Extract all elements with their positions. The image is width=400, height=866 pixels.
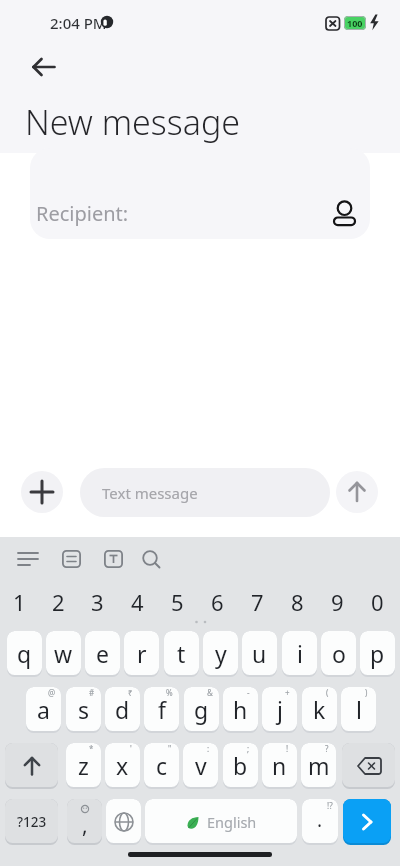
button[interactable]: e <box>85 631 120 677</box>
button[interactable]: 0 <box>357 587 397 615</box>
staticText: l <box>356 694 362 725</box>
staticText: Text message <box>102 483 198 503</box>
button[interactable] <box>24 48 64 86</box>
staticText: u <box>252 638 267 669</box>
button[interactable] <box>8 544 48 574</box>
staticText: p <box>370 638 385 669</box>
staticText: g <box>194 694 209 725</box>
staticText: % <box>166 687 173 698</box>
staticText: h <box>233 694 248 725</box>
button[interactable]: i <box>282 631 317 677</box>
staticText: w <box>54 638 73 669</box>
staticText: 3 <box>91 587 104 615</box>
button[interactable]: b <box>223 743 258 789</box>
button[interactable] <box>336 471 378 513</box>
staticText: r <box>137 638 147 669</box>
staticText: - <box>247 687 250 698</box>
button[interactable]: 9 <box>317 587 357 615</box>
button[interactable]: p <box>360 631 395 677</box>
staticText: " <box>168 743 172 754</box>
button[interactable] <box>93 544 133 574</box>
button[interactable]: ?123 <box>5 799 58 845</box>
staticText: English <box>207 812 257 832</box>
staticText: 5 <box>171 587 184 615</box>
staticText: & <box>207 687 213 698</box>
staticText: d <box>115 694 130 725</box>
staticText: ₹ <box>128 687 133 698</box>
staticText: ! <box>286 743 289 754</box>
button[interactable]: l <box>341 687 376 733</box>
button[interactable]: a <box>26 687 61 733</box>
staticText: ) <box>365 687 368 698</box>
staticText: f <box>158 694 166 725</box>
staticText: ( <box>326 687 329 698</box>
button[interactable]: h <box>223 687 258 733</box>
button[interactable]: u <box>242 631 277 677</box>
staticText: ; <box>247 743 250 754</box>
button[interactable]: v <box>183 743 218 789</box>
button[interactable] <box>51 544 91 574</box>
button[interactable]: x <box>105 743 140 789</box>
button[interactable]: 7 <box>237 587 277 615</box>
button[interactable]: Text message <box>80 468 330 517</box>
staticText: 8 <box>291 587 304 615</box>
staticText: # <box>89 687 95 698</box>
staticText: 6 <box>211 587 224 615</box>
button[interactable]: 2 <box>39 587 78 615</box>
button[interactable]: c <box>144 743 179 789</box>
staticText: 2:04 PM <box>50 13 107 33</box>
staticText: c <box>156 750 168 781</box>
staticText: i <box>297 638 303 669</box>
button[interactable] <box>106 799 141 845</box>
button[interactable]: d <box>105 687 140 733</box>
staticText: j <box>277 694 283 725</box>
button[interactable]: 5 <box>157 587 197 615</box>
button[interactable]: 6 <box>197 587 237 615</box>
button[interactable]: 1 <box>0 587 39 615</box>
staticText: . <box>317 807 323 833</box>
staticText: 1 <box>13 587 26 615</box>
button[interactable]: f <box>144 687 179 733</box>
button[interactable]: m <box>301 743 336 789</box>
staticText: b <box>233 750 248 781</box>
button[interactable]: r <box>124 631 159 677</box>
button[interactable]: w <box>46 631 81 677</box>
button[interactable]: , <box>67 799 102 845</box>
staticText: @ <box>48 687 56 698</box>
button[interactable]: k <box>302 687 337 733</box>
button[interactable] <box>21 471 63 513</box>
button[interactable] <box>342 743 395 789</box>
button[interactable]: t <box>164 631 199 677</box>
staticText: 2 <box>52 587 65 615</box>
staticText: x <box>116 750 129 781</box>
button[interactable] <box>131 544 171 574</box>
staticText: 4 <box>131 587 144 615</box>
button[interactable]: English <box>145 799 297 845</box>
staticText: , <box>82 811 88 840</box>
button[interactable] <box>5 743 58 789</box>
staticText: n <box>272 750 287 781</box>
staticText: m <box>308 750 330 781</box>
staticText: ?123 <box>17 813 47 831</box>
staticText: 0 <box>371 587 384 615</box>
button[interactable]: z <box>66 743 101 789</box>
button[interactable]: n <box>262 743 297 789</box>
staticText: 7 <box>251 587 264 615</box>
button[interactable]: Recipient: <box>30 148 370 239</box>
button[interactable]: q <box>7 631 42 677</box>
button[interactable]: g <box>184 687 219 733</box>
button[interactable]: !? <box>302 799 338 845</box>
button[interactable]: 4 <box>117 587 157 615</box>
staticText: q <box>17 638 32 669</box>
staticText: s <box>78 694 90 725</box>
button[interactable] <box>343 799 391 845</box>
button[interactable]: 3 <box>78 587 117 615</box>
button[interactable]: y <box>203 631 238 677</box>
button[interactable]: s <box>66 687 101 733</box>
button[interactable]: 8 <box>277 587 317 615</box>
button[interactable]: j <box>262 687 297 733</box>
staticText: y <box>215 638 227 669</box>
button[interactable]: o <box>321 631 356 677</box>
staticText: k <box>313 694 326 725</box>
staticText: ? <box>325 743 329 754</box>
